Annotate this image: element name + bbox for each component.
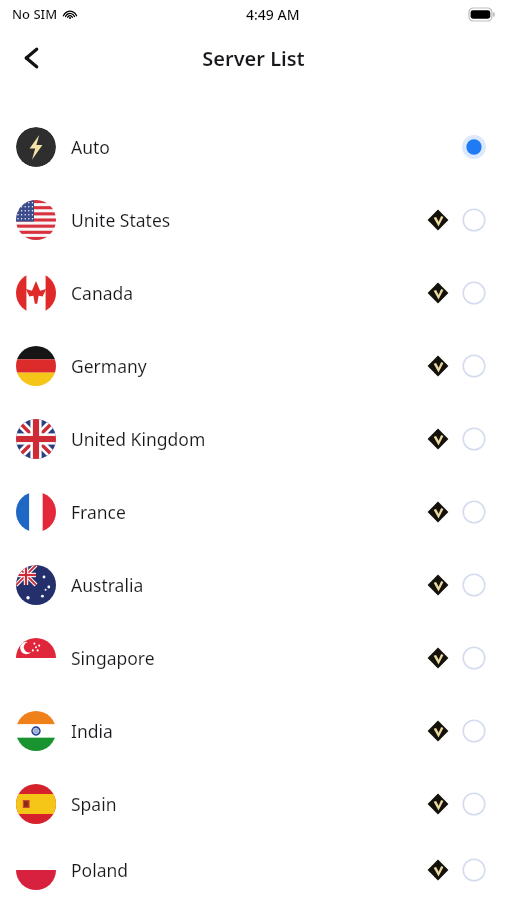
button[interactable]: Unite States: [0, 183, 507, 256]
other: Premium: [425, 572, 451, 598]
other: Premium: [425, 353, 451, 379]
other: Premium: [425, 499, 451, 525]
button[interactable]: Singapore: [0, 621, 507, 694]
staticText: 4:49 AM: [246, 5, 300, 24]
staticText: Unite States: [71, 208, 171, 232]
button[interactable]: Australia: [0, 548, 507, 621]
other: Premium: [425, 857, 451, 883]
staticText: Australia: [71, 573, 144, 597]
staticText: Auto: [71, 135, 110, 159]
other: Premium: [425, 207, 451, 233]
button[interactable]: Back: [8, 34, 56, 82]
button[interactable]: Germany: [0, 329, 507, 402]
button[interactable]: Spain: [0, 767, 507, 840]
button[interactable]: Auto: [0, 110, 507, 183]
staticText: Spain: [71, 792, 117, 816]
staticText: France: [71, 500, 126, 524]
button[interactable]: Canada: [0, 256, 507, 329]
staticText: Canada: [71, 281, 134, 305]
other: Premium: [425, 426, 451, 452]
staticText: Singapore: [71, 646, 155, 670]
staticText: United Kingdom: [71, 427, 206, 451]
other: Premium: [425, 718, 451, 744]
button[interactable]: United Kingdom: [0, 402, 507, 475]
button[interactable]: France: [0, 475, 507, 548]
button[interactable]: Poland: [0, 840, 507, 900]
other: Premium: [425, 645, 451, 671]
staticText: No SIM: [12, 5, 58, 23]
staticText: Germany: [71, 354, 147, 378]
button[interactable]: India: [0, 694, 507, 767]
staticText: Server List: [202, 45, 305, 72]
other: Premium: [425, 791, 451, 817]
staticText: Poland: [71, 858, 129, 882]
other: Premium: [425, 280, 451, 306]
staticText: India: [71, 719, 113, 743]
